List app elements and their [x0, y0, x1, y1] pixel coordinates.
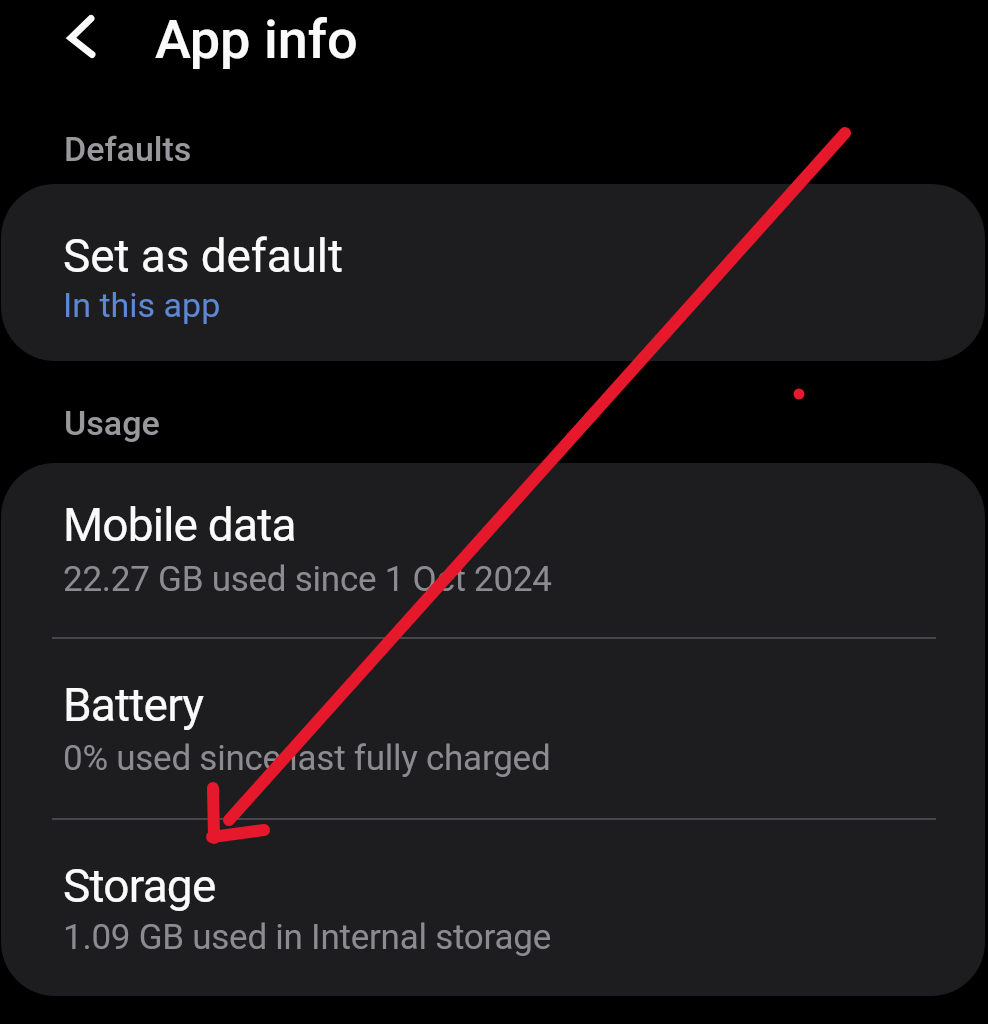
button[interactable]: Storage: [1, 820, 985, 996]
button[interactable]: [51, 6, 113, 68]
staticText: 0% used since last fully charged: [63, 738, 551, 779]
staticText: In this app: [63, 285, 221, 325]
staticText: Battery: [63, 678, 204, 732]
staticText: Defaults: [64, 129, 192, 169]
staticText: Mobile data: [63, 498, 296, 552]
button[interactable]: Mobile data: [1, 463, 985, 637]
staticText: App info: [155, 8, 358, 71]
button[interactable]: Set as default: [1, 184, 985, 361]
staticText: Set as default: [63, 229, 343, 283]
staticText: 22.27 GB used since 1 Oct 2024: [63, 559, 552, 600]
staticText: Storage: [63, 859, 216, 913]
button[interactable]: Battery: [1, 639, 985, 818]
staticText: Usage: [64, 403, 160, 443]
staticText: 1.09 GB used in Internal storage: [63, 917, 551, 958]
